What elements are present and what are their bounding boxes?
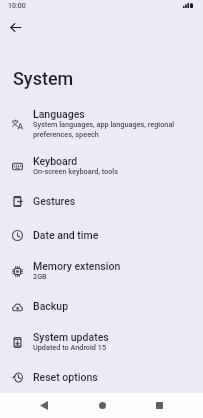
- staticText: Backup: [33, 300, 69, 312]
- button[interactable]: Back: [29, 393, 59, 418]
- button[interactable]: Home: [87, 393, 117, 418]
- staticText: Memory extension: [33, 260, 121, 272]
- staticText: On-screen keyboard, tools: [33, 167, 118, 176]
- button[interactable]: System updates: [0, 323, 203, 360]
- button[interactable]: Date and time: [0, 218, 203, 252]
- staticText: 10:00: [8, 2, 26, 10]
- button[interactable]: Backup: [0, 289, 203, 323]
- staticText: Updated to Android 15: [33, 343, 107, 352]
- staticText: Reset options: [33, 371, 98, 383]
- staticText: Date and time: [33, 229, 99, 241]
- button[interactable]: Keyboard: [0, 147, 203, 184]
- button[interactable]: Memory extension: [0, 252, 203, 289]
- button[interactable]: Reset options: [0, 360, 203, 394]
- staticText: 2GB: [33, 272, 47, 281]
- staticText: System: [13, 68, 74, 89]
- staticText: System updates: [33, 331, 109, 343]
- button[interactable]: Languages: [0, 100, 203, 147]
- staticText: Keyboard: [33, 155, 78, 167]
- staticText: Languages: [33, 108, 85, 120]
- button[interactable]: Navigate up: [4, 16, 26, 38]
- staticText: Gestures: [33, 195, 76, 207]
- button[interactable]: Recent apps: [144, 393, 174, 418]
- button[interactable]: Gestures: [0, 184, 203, 218]
- staticText: System languages, app languages, regiona…: [33, 120, 175, 139]
